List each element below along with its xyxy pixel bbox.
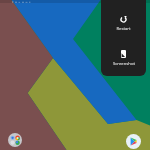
staticText: Screenshot [113, 61, 135, 67]
button[interactable]: Screenshot [101, 50, 146, 67]
button[interactable]: Restart [101, 16, 146, 32]
staticText: Restart [116, 26, 131, 32]
button[interactable]: Google folder [8, 133, 22, 147]
button[interactable]: Play Store [126, 134, 141, 149]
